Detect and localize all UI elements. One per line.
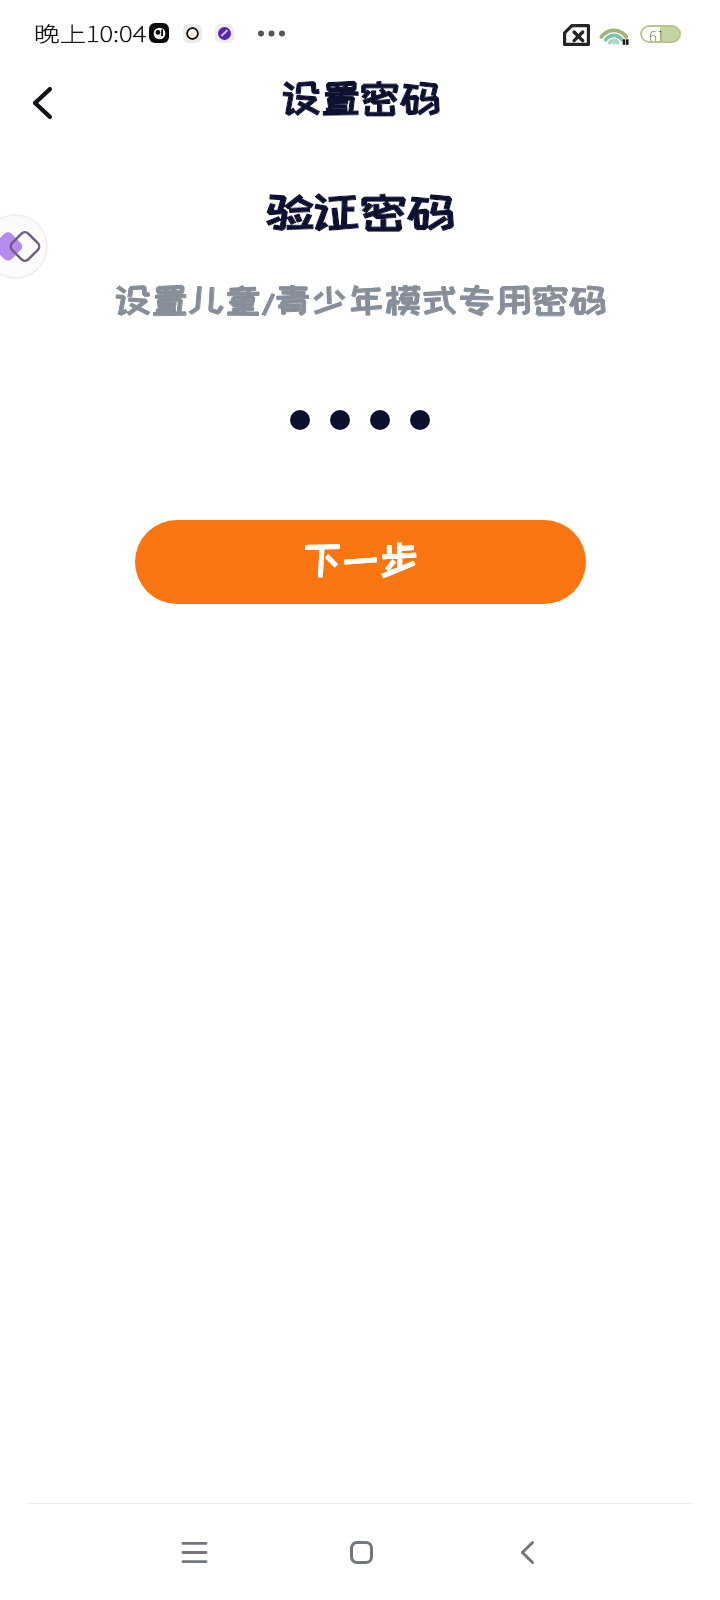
staticText: 61	[649, 25, 665, 43]
staticText: 设置密码	[281, 77, 440, 117]
button[interactable]: Recent apps	[124, 1504, 264, 1600]
staticText: 验证密码	[266, 190, 454, 233]
button[interactable]: 下一步	[135, 520, 586, 604]
button[interactable]: Floating assistant	[0, 214, 48, 279]
staticText: 设置密码	[281, 77, 440, 117]
staticText: 设置儿童/青少年模式专用密码	[114, 282, 606, 318]
staticText: 晚上10:04	[34, 17, 147, 49]
button[interactable]: Back	[11, 72, 73, 134]
staticText: 下一步	[303, 539, 418, 581]
staticText: 设置儿童/青少年模式专用密码	[114, 282, 606, 318]
button[interactable]: Home	[291, 1504, 431, 1600]
staticText: 验证密码	[266, 190, 454, 233]
staticText: 下一步	[303, 539, 418, 581]
button[interactable]: Back	[457, 1504, 597, 1600]
